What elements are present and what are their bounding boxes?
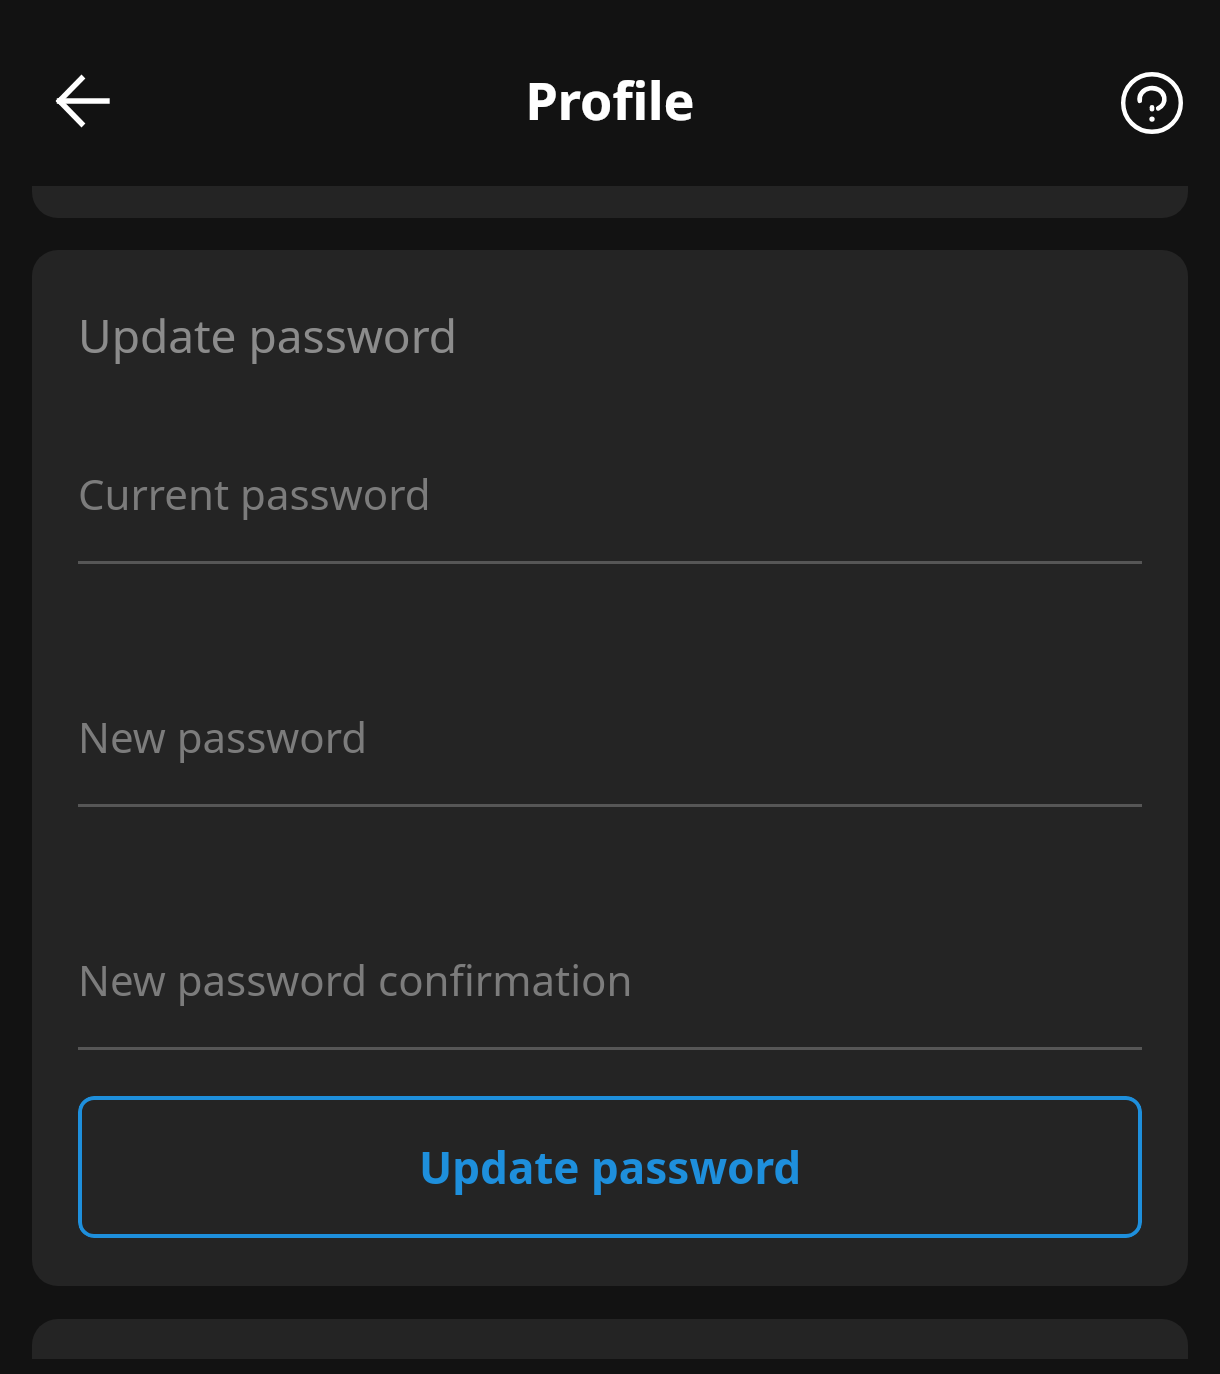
staticText: Profile <box>525 64 695 135</box>
staticText: New password confirmation <box>78 951 633 1008</box>
button[interactable]: Current password <box>78 465 1142 564</box>
staticText: Current password <box>78 465 431 522</box>
button[interactable]: Help <box>1092 43 1212 163</box>
button[interactable]: Back <box>23 41 143 161</box>
button[interactable]: New password <box>78 708 1142 807</box>
button[interactable]: New password confirmation <box>78 951 1142 1050</box>
button[interactable]: Update password <box>78 1096 1142 1238</box>
staticText: Update password <box>419 1137 802 1197</box>
staticText: Update password <box>78 304 458 367</box>
staticText: New password <box>78 708 368 765</box>
